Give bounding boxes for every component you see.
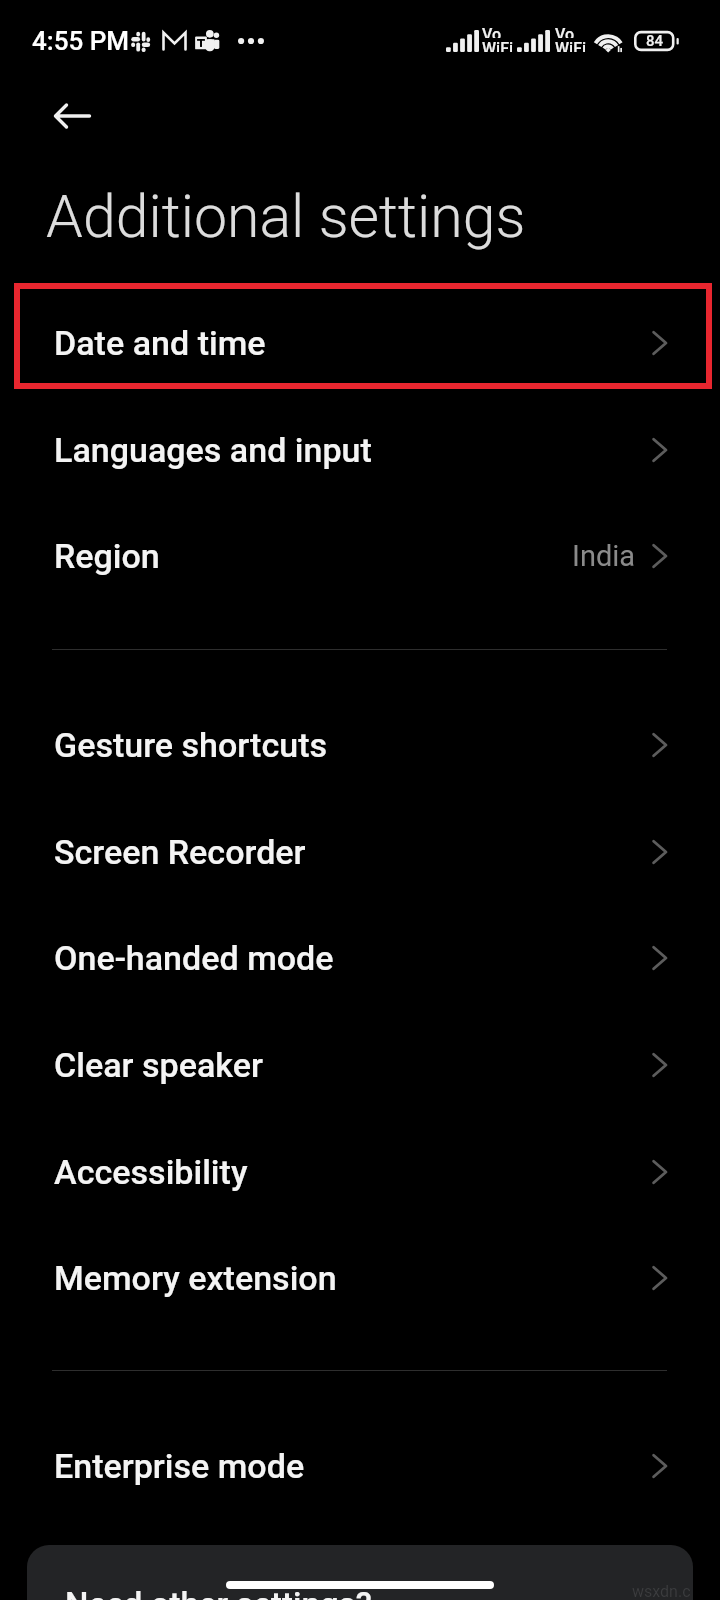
staticText: Screen Recorder: [54, 832, 306, 872]
staticText: wsxdn.c: [632, 1582, 691, 1600]
button[interactable]: Languages and input: [0, 396, 720, 503]
staticText: Additional settings: [46, 182, 526, 251]
staticText: Vo: [555, 25, 575, 38]
staticText: Memory extension: [54, 1258, 337, 1298]
staticText: WiFi: [555, 39, 587, 52]
button[interactable]: Need other settings?: [27, 1545, 693, 1600]
staticText: Languages and input: [54, 430, 372, 470]
button[interactable]: Back: [38, 89, 94, 145]
staticText: Enterprise mode: [54, 1446, 305, 1486]
staticText: Clear speaker: [54, 1045, 263, 1085]
button[interactable]: Gesture shortcuts: [0, 691, 720, 798]
staticText: WiFi: [482, 39, 514, 52]
staticText: India: [572, 539, 636, 573]
staticText: Vo: [482, 25, 502, 38]
staticText: One-handed mode: [54, 938, 334, 978]
staticText: Date and time: [54, 323, 266, 363]
staticText: Accessibility: [54, 1152, 248, 1192]
button[interactable]: Accessibility: [0, 1118, 720, 1225]
staticText: Need other settings?: [65, 1585, 372, 1600]
staticText: Region: [54, 536, 160, 576]
button[interactable]: Date and time: [0, 289, 720, 396]
button[interactable]: Memory extension: [0, 1224, 720, 1331]
staticText: 4:55 PM: [32, 26, 130, 56]
button[interactable]: Clear speaker: [0, 1011, 720, 1118]
button[interactable]: Screen Recorder: [0, 798, 720, 905]
button[interactable]: One-handed mode: [0, 904, 720, 1011]
staticText: 84: [646, 32, 664, 50]
button[interactable]: Region: [0, 502, 720, 609]
staticText: Gesture shortcuts: [54, 725, 328, 765]
button[interactable]: Enterprise mode: [0, 1412, 720, 1519]
